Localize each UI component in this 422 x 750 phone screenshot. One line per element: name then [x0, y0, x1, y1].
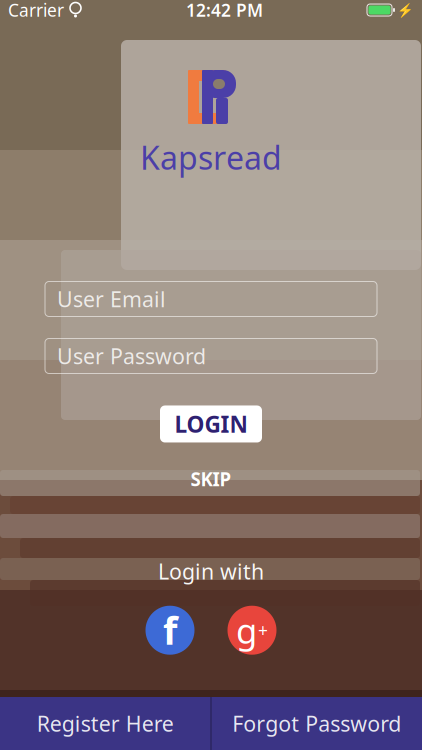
staticText: 12:42 PM	[186, 0, 263, 21]
staticText: g	[236, 607, 257, 653]
staticText: ⚡	[397, 2, 414, 18]
button[interactable]: Forgot Password	[212, 697, 422, 750]
button[interactable]: Register Here	[0, 697, 210, 750]
staticText: f	[163, 605, 177, 655]
staticText: LOGIN	[174, 409, 247, 439]
staticText: User Password	[57, 342, 206, 370]
button[interactable]: User Email	[45, 281, 377, 316]
staticText: Forgot Password	[232, 709, 401, 738]
button[interactable]: SKIP	[172, 460, 249, 497]
button[interactable]: Login with Facebook	[145, 605, 194, 655]
button[interactable]: Login with Google Plus	[227, 606, 276, 655]
staticText: Carrier	[8, 0, 64, 21]
button[interactable]: User Password	[45, 338, 377, 373]
button[interactable]: LOGIN	[160, 405, 262, 442]
staticText: Kapsread	[140, 136, 282, 178]
staticText: Register Here	[37, 709, 174, 738]
staticText: SKIP	[190, 466, 231, 491]
staticText: +	[258, 619, 268, 642]
staticText: User Email	[57, 285, 166, 313]
staticText: Login with	[158, 557, 264, 585]
